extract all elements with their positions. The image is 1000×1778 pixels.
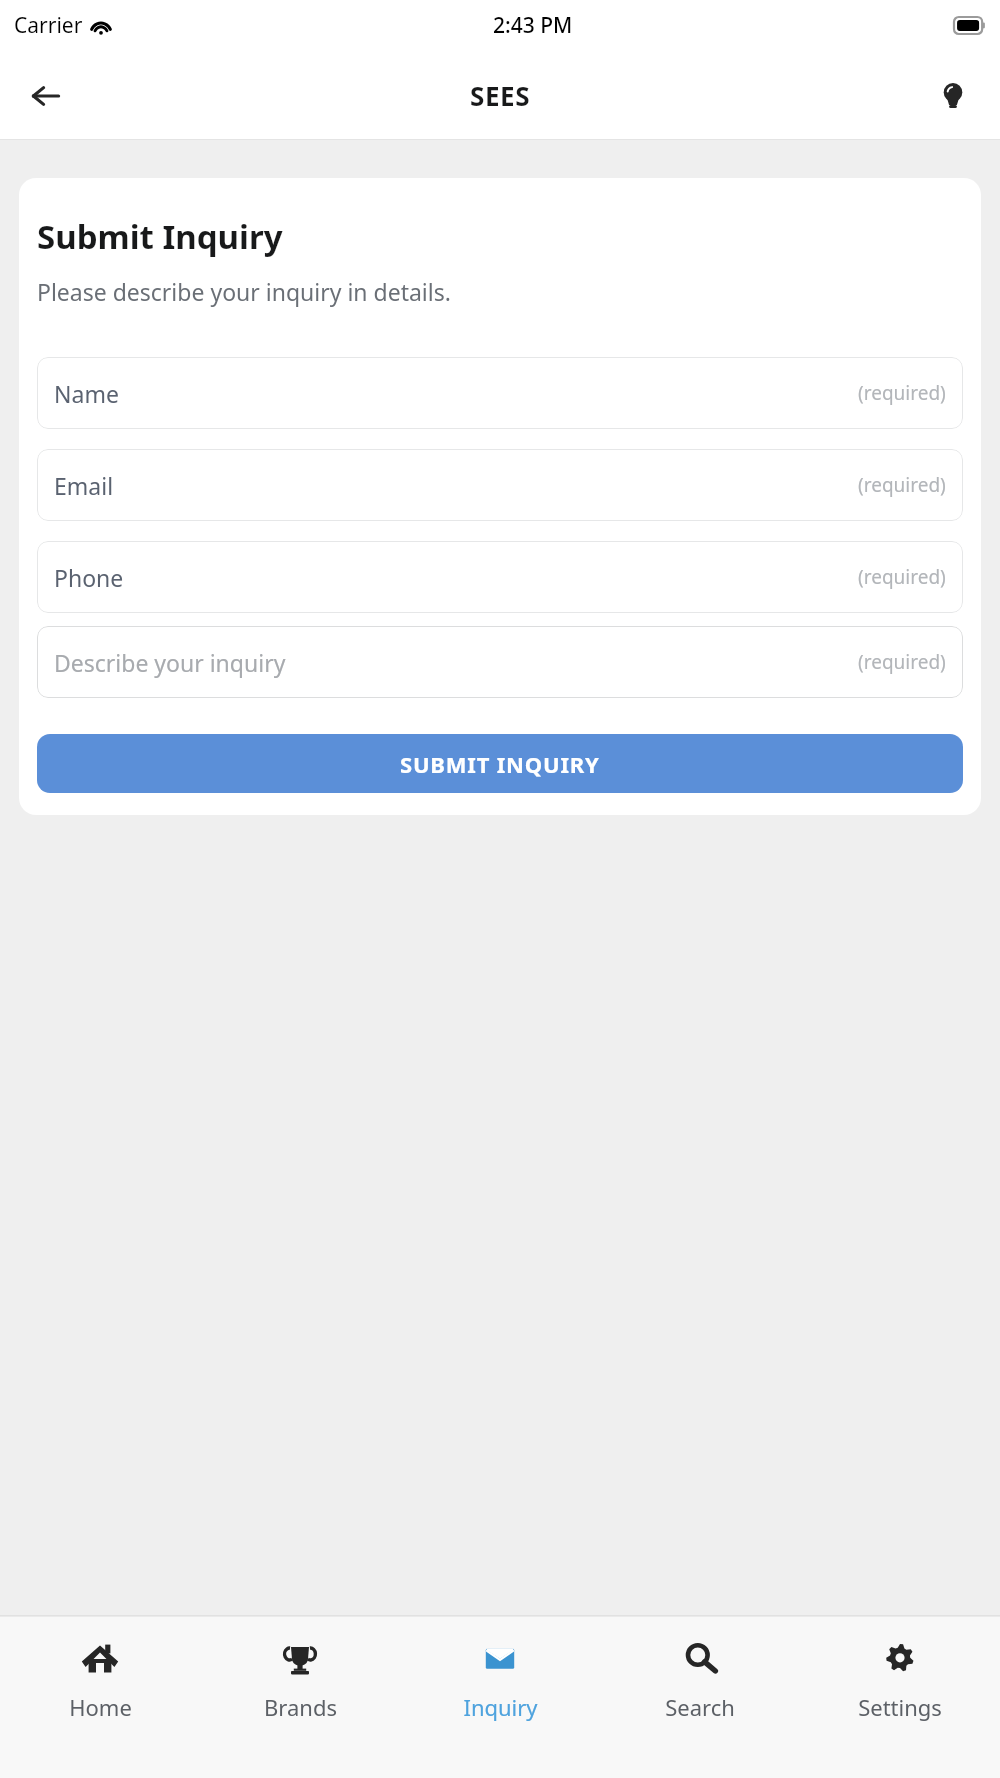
- staticText: 2:43 PM: [493, 11, 573, 40]
- staticText: Submit Inquiry: [37, 214, 283, 259]
- staticText: Phone: [54, 562, 124, 593]
- button[interactable]: Inquiry: [400, 1617, 600, 1778]
- staticText: Brands: [264, 1692, 337, 1722]
- staticText: (required): [858, 380, 946, 406]
- staticText: SEES: [470, 78, 531, 113]
- button[interactable]: Phone: [37, 541, 963, 613]
- staticText: Name: [54, 378, 119, 409]
- staticText: SUBMIT INQUIRY: [400, 749, 600, 779]
- staticText: Describe your inquiry: [54, 647, 286, 678]
- staticText: Please describe your inquiry in details.: [37, 276, 451, 307]
- button[interactable]: Tips: [922, 65, 984, 127]
- button[interactable]: Home: [0, 1617, 200, 1778]
- staticText: Home: [69, 1692, 132, 1722]
- staticText: (required): [858, 649, 946, 675]
- staticText: (required): [858, 472, 946, 498]
- button[interactable]: Search: [600, 1617, 800, 1778]
- staticText: Email: [54, 470, 114, 501]
- staticText: Inquiry: [463, 1692, 538, 1722]
- button[interactable]: Describe your inquiry: [37, 626, 963, 698]
- button[interactable]: Settings: [800, 1617, 1000, 1778]
- button[interactable]: Back: [14, 64, 78, 128]
- staticText: Carrier: [14, 11, 83, 40]
- staticText: Settings: [858, 1692, 942, 1722]
- button[interactable]: SUBMIT INQUIRY: [37, 734, 963, 793]
- staticText: Search: [665, 1692, 735, 1722]
- staticText: (required): [858, 564, 946, 590]
- button[interactable]: Name: [37, 357, 963, 429]
- button[interactable]: Email: [37, 449, 963, 521]
- button[interactable]: Brands: [200, 1617, 400, 1778]
